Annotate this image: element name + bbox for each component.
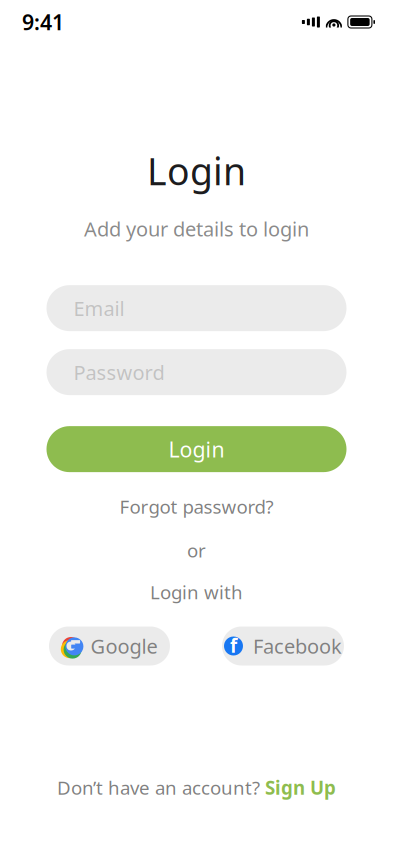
staticText: Don’t have an account? xyxy=(57,775,260,800)
button[interactable]: Login xyxy=(46,426,346,472)
button[interactable]: Don’t have an account? xyxy=(47,769,346,806)
staticText: Login xyxy=(168,435,224,463)
button[interactable]: Forgot password? xyxy=(111,490,281,523)
staticText: Facebook xyxy=(253,633,342,659)
staticText: Login with xyxy=(150,580,243,604)
button[interactable]: f xyxy=(222,626,344,665)
button[interactable]: Google xyxy=(49,626,170,665)
staticText: Forgot password? xyxy=(119,494,273,519)
staticText: or xyxy=(187,538,206,563)
staticText: Add your details to login xyxy=(84,216,309,242)
staticText: Google xyxy=(90,633,157,659)
staticText: 9:41 xyxy=(22,8,64,36)
staticText: f xyxy=(230,633,237,658)
staticText: Email xyxy=(73,295,124,321)
staticText: Password xyxy=(73,359,164,385)
staticText: Login xyxy=(147,146,246,196)
staticText: Sign Up xyxy=(265,775,336,800)
